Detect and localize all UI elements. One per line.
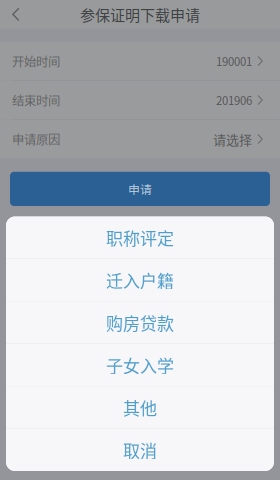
button[interactable]: Back: [0, 0, 32, 29]
staticText: 迁入户籍: [106, 268, 174, 292]
button[interactable]: 结束时间: [0, 81, 280, 119]
staticText: 申请原因: [12, 130, 60, 148]
button[interactable]: 申请: [10, 172, 270, 206]
staticText: 子女入学: [106, 353, 174, 377]
staticText: 201906: [216, 92, 252, 108]
staticText: 请选择: [213, 130, 252, 148]
staticText: 开始时间: [12, 52, 60, 70]
staticText: 结束时间: [12, 91, 60, 109]
button[interactable]: 职称评定: [6, 216, 274, 258]
staticText: 取消: [123, 438, 157, 462]
button[interactable]: 购房贷款: [6, 301, 274, 343]
staticText: 其他: [123, 395, 157, 420]
staticText: 190001: [216, 53, 252, 69]
button[interactable]: 子女入学: [6, 344, 274, 386]
staticText: 申请: [128, 180, 152, 197]
button[interactable]: 其他: [6, 386, 274, 428]
staticText: 购房贷款: [106, 310, 174, 335]
button[interactable]: 申请原因: [0, 120, 280, 158]
staticText: 参保证明下载申请: [80, 3, 200, 25]
button[interactable]: 迁入户籍: [6, 259, 274, 301]
button[interactable]: 开始时间: [0, 42, 280, 80]
staticText: 职称评定: [106, 225, 174, 250]
button[interactable]: 取消: [6, 429, 274, 471]
